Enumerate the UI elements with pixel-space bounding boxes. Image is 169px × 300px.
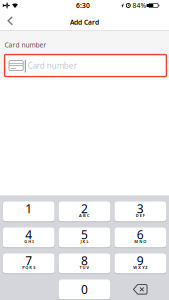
staticText: G H I — [24, 239, 33, 244]
button[interactable]: 5 — [59, 227, 110, 248]
staticText: Add Card — [70, 18, 99, 26]
staticText: 7 — [25, 253, 32, 269]
button[interactable]: 7 — [3, 253, 54, 274]
button[interactable]: 4 — [3, 227, 54, 248]
staticText: 5 — [81, 227, 88, 243]
staticText: 4 — [25, 227, 32, 243]
staticText: 1 — [25, 201, 32, 217]
staticText: P Q R S — [22, 265, 35, 270]
staticText: 6 — [137, 227, 144, 243]
button[interactable]: 2 — [59, 201, 110, 222]
staticText: 84% — [133, 1, 147, 10]
staticText: D E F — [136, 213, 145, 218]
staticText: 2 — [81, 201, 88, 217]
button[interactable]: 8 — [59, 253, 110, 274]
staticText: Card number — [4, 40, 46, 49]
staticText: 0 — [81, 281, 88, 297]
button[interactable]: 3 — [114, 201, 166, 222]
staticText: 8 — [81, 253, 88, 269]
staticText: W X Y Z — [133, 265, 147, 270]
button[interactable]: Card number — [5, 55, 166, 77]
staticText: Card number — [28, 60, 77, 71]
staticText: T U V — [79, 265, 89, 270]
staticText: 3 — [137, 201, 144, 217]
staticText: M N O — [134, 239, 146, 244]
button[interactable]: 1 — [3, 201, 54, 222]
button[interactable]: 0 — [59, 279, 110, 300]
button[interactable]: Delete — [114, 279, 166, 300]
staticText: 9 — [137, 253, 144, 269]
staticText: J K L — [80, 239, 88, 244]
staticText: 6:30 — [76, 1, 90, 10]
button[interactable]: Back — [0, 12, 13, 29]
button[interactable]: 6 — [114, 227, 166, 248]
staticText: A B C — [79, 213, 90, 218]
button[interactable]: 9 — [114, 253, 166, 274]
